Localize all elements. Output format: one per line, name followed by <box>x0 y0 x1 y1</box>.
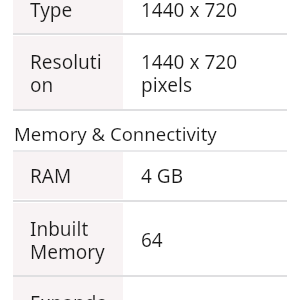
button[interactable]: Expandable Memory <box>13 276 287 300</box>
staticText: Type <box>30 0 73 22</box>
button[interactable]: Resolution <box>13 36 287 109</box>
staticText: 4 GB <box>141 165 183 188</box>
staticText: Expandable Memory <box>30 292 108 300</box>
staticText: 64 <box>141 229 163 252</box>
button[interactable]: Type <box>13 0 287 34</box>
button[interactable]: RAM <box>13 151 287 199</box>
staticText: Inbuilt Memory <box>30 218 108 264</box>
staticText: Resolution <box>30 51 108 97</box>
staticText: 1440 x 720 pixels <box>141 51 285 97</box>
staticText: Memory & Connectivity <box>14 123 217 146</box>
staticText: RAM <box>30 165 72 188</box>
staticText: 1440 x 720 <box>141 0 238 22</box>
button[interactable]: Inbuilt Memory <box>13 203 287 276</box>
